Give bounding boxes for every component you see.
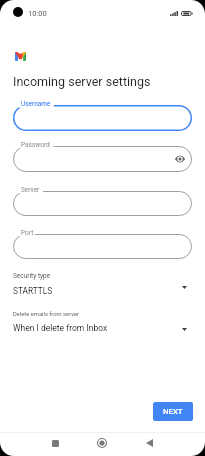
button[interactable]: Security type [0,269,205,301]
button[interactable]: Username [13,105,192,131]
staticText: Incoming server settings [13,74,151,89]
button[interactable]: Password [13,146,192,172]
staticText: STARTTLS [13,286,53,296]
button[interactable]: Server [13,191,192,216]
staticText: 10:00 [28,9,47,18]
staticText: Password [21,141,50,149]
button[interactable]: Home [88,432,116,456]
button[interactable]: Back [135,432,163,456]
staticText: Server [21,186,40,194]
staticText: When I delete from Inbox [13,323,108,333]
staticText: Username [21,100,51,108]
button[interactable]: NEXT [153,402,193,421]
staticText: Delete emails from server [13,311,79,318]
button[interactable]: Port [13,234,192,259]
button[interactable]: Delete emails from server [0,308,205,338]
staticText: NEXT [163,407,183,416]
button[interactable]: Show password [175,154,185,164]
staticText: Security type [13,272,51,280]
staticText: Port [21,229,34,237]
button[interactable]: Recent apps [41,432,69,456]
